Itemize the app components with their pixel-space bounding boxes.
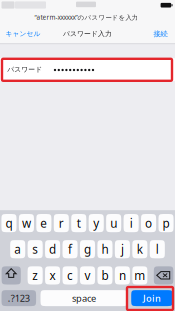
staticText: k [137,241,143,257]
button[interactable]: t [71,214,86,232]
button[interactable]: m [132,266,147,284]
staticText: g [84,241,91,257]
staticText: h [101,241,108,257]
button[interactable]: space [40,290,127,306]
staticText: r [59,215,64,231]
button[interactable]: b [97,266,112,284]
staticText: Join [143,292,161,304]
button[interactable]: d [45,240,60,258]
staticText: l [156,241,159,257]
staticText: z [32,267,38,283]
staticText: パスワード [7,65,42,74]
staticText: m [134,267,145,283]
staticText: キャンセル [5,29,40,38]
button[interactable]: Shift [2,266,21,284]
button[interactable]: u [106,214,121,232]
button[interactable]: c [62,266,78,284]
staticText: x [50,267,56,283]
button[interactable]: p [158,214,174,232]
button[interactable]: キャンセル [1,23,45,44]
button[interactable]: z [28,266,43,284]
button[interactable]: l [150,240,165,258]
button[interactable]: .?123 [1,290,36,306]
staticText: n [119,267,126,283]
button[interactable]: n [115,266,130,284]
button[interactable]: x [45,266,60,284]
button[interactable]: k [132,240,147,258]
staticText: j [121,241,124,257]
button[interactable]: h [97,240,112,258]
button[interactable]: v [80,266,95,284]
button[interactable]: Join [131,290,173,306]
staticText: d [49,241,56,257]
button[interactable]: r [54,214,69,232]
button[interactable]: i [124,214,139,232]
button[interactable]: w [19,214,34,232]
staticText: s [32,241,38,257]
button[interactable]: a [10,240,25,258]
staticText: 接続 [153,29,167,38]
staticText: f [68,241,72,257]
staticText: i [130,215,133,231]
button[interactable]: f [62,240,78,258]
staticText: .?123 [8,292,30,304]
staticText: u [110,215,117,231]
staticText: “aterm-xxxxxx”のパスワードを入力 [34,13,137,22]
button[interactable]: Delete [154,266,173,284]
staticText: v [84,267,90,283]
button[interactable]: g [80,240,95,258]
staticText: パスワード入力 [63,29,112,38]
staticText: p [162,215,169,231]
button[interactable]: j [115,240,130,258]
staticText: q [5,215,12,231]
staticText: w [22,215,31,231]
staticText: t [77,215,81,231]
button[interactable]: y [89,214,104,232]
staticText: b [101,267,108,283]
button[interactable]: s [28,240,43,258]
button[interactable]: 接続 [148,23,172,44]
staticText: space [72,292,96,304]
staticText: a [14,241,21,257]
staticText: c [67,267,73,283]
staticText: y [93,215,99,231]
staticText: e [40,215,47,231]
button[interactable]: q [1,214,16,232]
staticText: o [145,215,152,231]
button[interactable]: o [141,214,156,232]
button[interactable]: e [36,214,51,232]
